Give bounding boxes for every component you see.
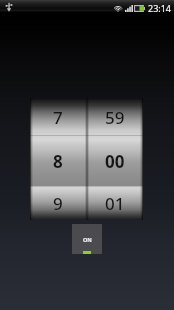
button[interactable]: 59 <box>86 98 143 136</box>
staticText: ON <box>83 236 92 243</box>
button[interactable]: 8 <box>30 136 86 187</box>
button[interactable]: 7 <box>30 98 86 136</box>
staticText: 59 <box>105 106 125 129</box>
button[interactable]: 00 <box>86 136 143 187</box>
button[interactable]: 01 <box>86 187 143 220</box>
staticText: 00 <box>105 150 125 173</box>
button[interactable]: 9 <box>30 187 86 220</box>
staticText: 8 <box>53 150 63 173</box>
staticText: 9 <box>53 192 63 215</box>
staticText: 23:14 <box>148 2 172 14</box>
staticText: 7 <box>53 106 63 129</box>
button[interactable]: ON <box>72 224 102 254</box>
staticText: 01 <box>105 192 125 215</box>
